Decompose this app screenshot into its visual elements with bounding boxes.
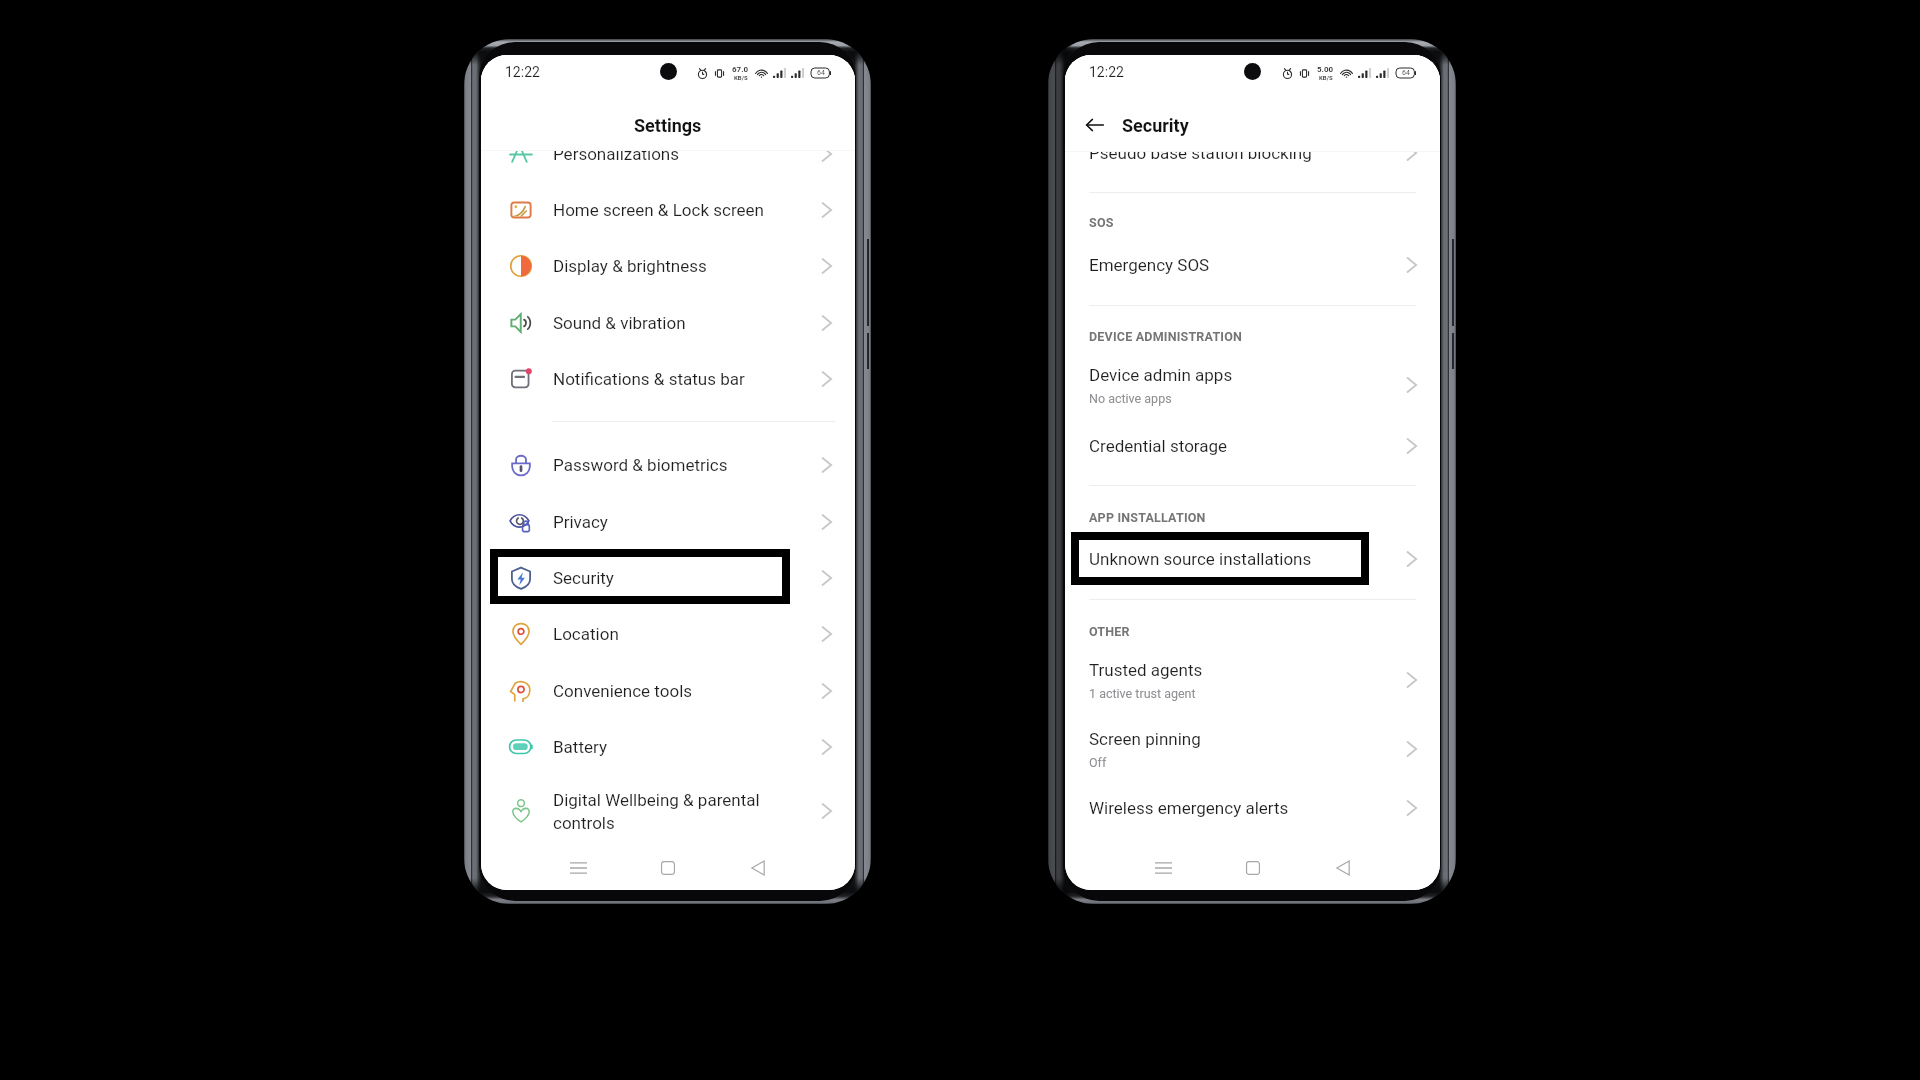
staticText: Home screen & Lock screen <box>553 200 764 220</box>
staticText: Sound & vibration <box>553 313 686 333</box>
staticText: 64 <box>1402 69 1410 77</box>
staticText: No active apps <box>1089 391 1172 406</box>
staticText: 1 active trust agent <box>1089 686 1196 701</box>
staticText: KB/S <box>734 74 748 81</box>
staticText: OTHER <box>1089 624 1130 639</box>
staticText: Device admin apps <box>1089 365 1233 385</box>
button[interactable]: Back <box>1080 110 1110 140</box>
staticText: SOS <box>1089 215 1114 230</box>
button[interactable]: Personalizations <box>481 126 855 182</box>
button[interactable]: Home screen & Lock screen <box>481 182 855 238</box>
button[interactable]: Back <box>1322 847 1364 889</box>
staticText: KB/S <box>1319 74 1333 81</box>
staticText: Privacy <box>553 512 608 532</box>
staticText: Battery <box>553 737 607 757</box>
button[interactable]: Notifications & status bar <box>481 351 855 407</box>
staticText: Display & brightness <box>553 256 707 276</box>
staticText: Location <box>553 624 619 644</box>
staticText: APP INSTALLATION <box>1089 510 1206 525</box>
staticText: 5.00 <box>1317 65 1334 74</box>
button[interactable]: Security <box>481 550 855 606</box>
staticText: Notifications & status bar <box>553 369 745 389</box>
button[interactable]: Unknown source installations <box>1065 533 1440 585</box>
button[interactable]: Trusted agents <box>1065 648 1440 712</box>
staticText: DEVICE ADMINISTRATION <box>1089 329 1243 344</box>
staticText: Convenience tools <box>553 681 693 701</box>
button[interactable]: Home <box>647 847 689 889</box>
staticText: 12:22 <box>1089 64 1124 80</box>
button[interactable]: Emergency SOS <box>1065 239 1440 291</box>
button[interactable]: Pseudo base station blocking <box>1065 127 1440 179</box>
staticText: Personalizations <box>553 144 679 164</box>
button[interactable]: Sound & vibration <box>481 295 855 351</box>
staticText: Unknown source installations <box>1089 549 1312 569</box>
button[interactable]: Credential storage <box>1065 420 1440 472</box>
staticText: Emergency SOS <box>1089 255 1210 275</box>
staticText: Credential storage <box>1089 436 1228 456</box>
button[interactable]: Battery <box>481 719 855 775</box>
staticText: Digital Wellbeing & parental controls <box>553 790 760 833</box>
staticText: Off <box>1089 755 1107 770</box>
staticText: 67.0 <box>732 65 749 74</box>
button[interactable]: Wireless emergency alerts <box>1065 782 1440 834</box>
staticText: Wireless emergency alerts <box>1089 798 1289 818</box>
button[interactable]: Back <box>737 847 779 889</box>
staticText: Password & biometrics <box>553 455 728 475</box>
button[interactable]: Display & brightness <box>481 238 855 294</box>
button[interactable]: Privacy <box>481 494 855 550</box>
staticText: Security <box>553 568 614 588</box>
button[interactable]: Home <box>1232 847 1274 889</box>
staticText: Security <box>1122 115 1189 136</box>
button[interactable]: Recent apps <box>1142 847 1184 889</box>
staticText: Screen pinning <box>1089 729 1201 749</box>
button[interactable]: Device admin apps <box>1065 353 1440 417</box>
staticText: 12:22 <box>505 64 540 80</box>
staticText: Pseudo base station blocking <box>1089 143 1399 163</box>
button[interactable]: Location <box>481 606 855 662</box>
staticText: Settings <box>634 115 702 136</box>
button[interactable]: Recent apps <box>557 847 599 889</box>
button[interactable]: Convenience tools <box>481 663 855 719</box>
button[interactable]: Password & biometrics <box>481 437 855 493</box>
staticText: Trusted agents <box>1089 660 1203 680</box>
button[interactable]: Screen pinning <box>1065 717 1440 781</box>
staticText: 64 <box>817 69 825 77</box>
button[interactable]: Digital Wellbeing & parental controls <box>481 776 855 846</box>
